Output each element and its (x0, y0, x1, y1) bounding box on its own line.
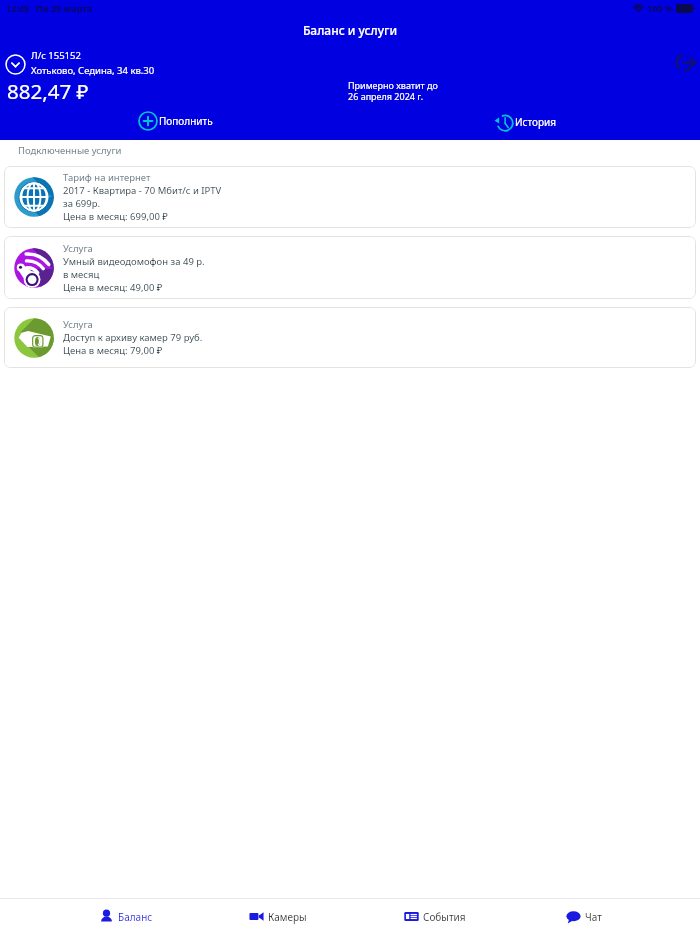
staticText: События (423, 910, 466, 924)
button[interactable]: Камеры (175, 899, 350, 934)
button[interactable]: Услуга (4, 307, 696, 368)
staticText: Услуга (63, 242, 93, 255)
staticText: Подключенные услуги (18, 144, 122, 157)
button[interactable]: Выбрать лицевой счёт (5, 54, 26, 75)
staticText: 12:45 (6, 2, 30, 14)
staticText: Цена в месяц: 699,00 ₽ (63, 210, 168, 223)
staticText: Баланс (118, 910, 153, 924)
staticText: Чат (585, 910, 602, 924)
staticText: Л/с 155152 (31, 49, 81, 62)
staticText: Пн 25 марта (36, 2, 93, 14)
button[interactable]: Услуга (4, 236, 696, 299)
staticText: Услуга (63, 318, 93, 331)
staticText: Цена в месяц: 49,00 ₽ (63, 281, 163, 294)
staticText: 882,47 ₽ (7, 77, 89, 105)
staticText: Хотьково, Седина, 34 кв.30 (31, 64, 155, 77)
staticText: 100 % (647, 2, 673, 14)
button[interactable]: Пополнить (138, 111, 213, 131)
staticText: Цена в месяц: 79,00 ₽ (63, 344, 163, 357)
button[interactable]: История (493, 111, 557, 133)
staticText: Умный видеодомофон за 49 р. (63, 255, 205, 268)
button[interactable]: Выход (672, 48, 700, 76)
staticText: Доступ к архиву камер 79 руб. (63, 331, 203, 344)
staticText: Баланс и услуги (0, 22, 700, 38)
staticText: в месяц (63, 268, 100, 281)
staticText: за 699р. (63, 197, 101, 210)
staticText: 2017 - Квартира - 70 Мбит/с и IPTV (63, 184, 222, 197)
staticText: История (515, 115, 557, 129)
staticText: 26 апреля 2024 г. (348, 90, 424, 102)
staticText: Камеры (268, 910, 307, 924)
staticText: Примерно хватит до (348, 79, 438, 91)
staticText: Тариф на интернет (63, 171, 151, 184)
button[interactable]: События (350, 899, 525, 934)
button[interactable]: Чат (525, 899, 700, 934)
staticText: Пополнить (159, 114, 213, 128)
button[interactable]: Тариф на интернет (4, 166, 696, 228)
button[interactable]: Баланс (0, 899, 175, 934)
